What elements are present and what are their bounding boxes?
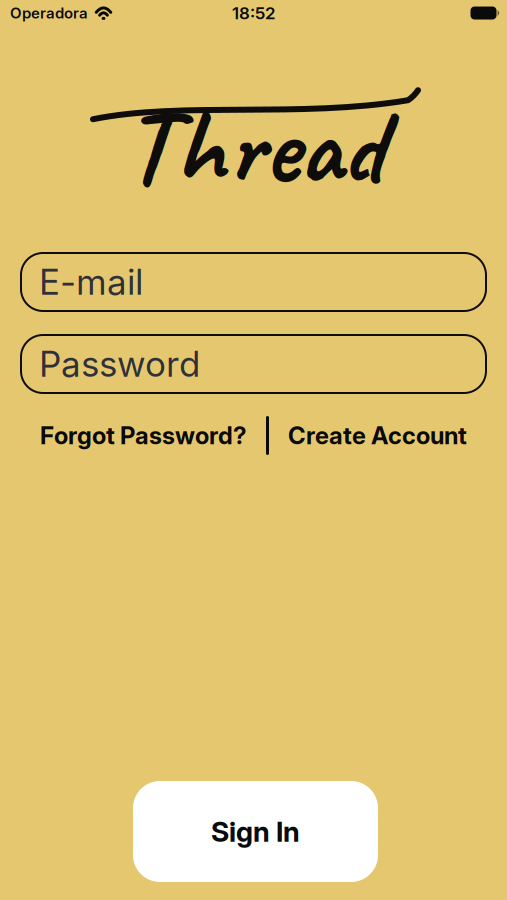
staticText: Forgot Password? [40, 421, 247, 450]
button[interactable]: E-mail [20, 252, 487, 312]
button[interactable]: Sign In [133, 781, 378, 882]
staticText: Create Account [288, 421, 467, 450]
button[interactable]: Password [20, 334, 487, 394]
staticText: 18:52 [232, 3, 275, 23]
staticText: Password [39, 343, 200, 385]
staticText: Thread [123, 80, 383, 214]
button[interactable]: Create Account [288, 421, 467, 450]
staticText: Sign In [211, 815, 300, 848]
staticText: Operadora [10, 4, 88, 22]
button[interactable]: Forgot Password? [40, 421, 247, 450]
staticText: E-mail [39, 261, 143, 303]
